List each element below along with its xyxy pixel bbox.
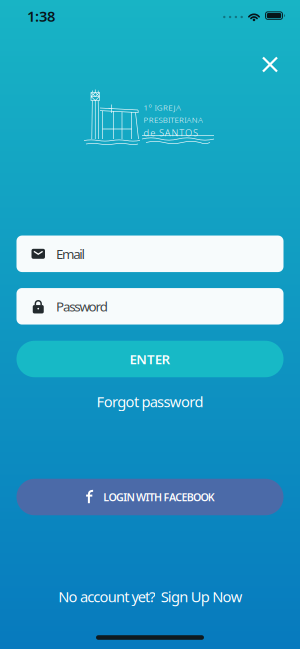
button[interactable]: Email [16, 236, 283, 272]
staticText: Forgot password [96, 392, 204, 411]
staticText: PRESBITERIANA [143, 114, 203, 125]
button[interactable]: Password [16, 288, 283, 325]
staticText: Password [56, 297, 108, 315]
button[interactable]: LOGIN WITH FACEBOOK [16, 479, 283, 515]
staticText: 1º IGREJA [143, 102, 181, 113]
staticText: 1:38 [27, 6, 55, 26]
staticText: No account yet? [58, 587, 155, 606]
staticText: LOGIN WITH FACEBOOK [103, 490, 215, 504]
staticText: ENTER [129, 350, 171, 368]
button[interactable]: Close [255, 49, 285, 79]
staticText: Email [56, 245, 84, 263]
button[interactable]: ENTER [16, 341, 283, 377]
button[interactable]: Sign Up Now [161, 587, 243, 606]
staticText: de SANTOS [143, 126, 198, 139]
button[interactable]: Forgot password [96, 392, 204, 411]
staticText: Sign Up Now [161, 587, 243, 606]
